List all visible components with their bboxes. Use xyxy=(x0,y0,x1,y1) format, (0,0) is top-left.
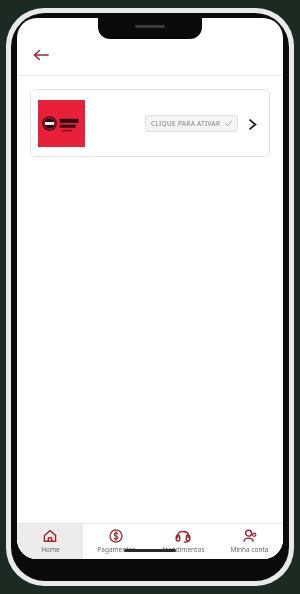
button[interactable]: CLIQUE PARA ATIVAR xyxy=(145,115,238,132)
staticText: Pagamentos xyxy=(97,545,136,554)
button[interactable]: Minha conta xyxy=(216,524,283,559)
button[interactable]: Abrir xyxy=(244,116,260,132)
button[interactable]: Pagamentos xyxy=(83,524,149,559)
staticText: CLIQUE PARA ATIVAR xyxy=(151,119,221,128)
button[interactable]: Voltar xyxy=(25,39,57,71)
button[interactable]: Atendimentos xyxy=(149,524,216,559)
button[interactable]: Home xyxy=(17,524,83,559)
button[interactable]: CLIQUE PARA ATIVAR xyxy=(30,89,270,157)
staticText: Home xyxy=(41,545,60,554)
staticText: Atendimentos xyxy=(161,545,205,554)
staticText: Minha conta xyxy=(230,545,269,554)
